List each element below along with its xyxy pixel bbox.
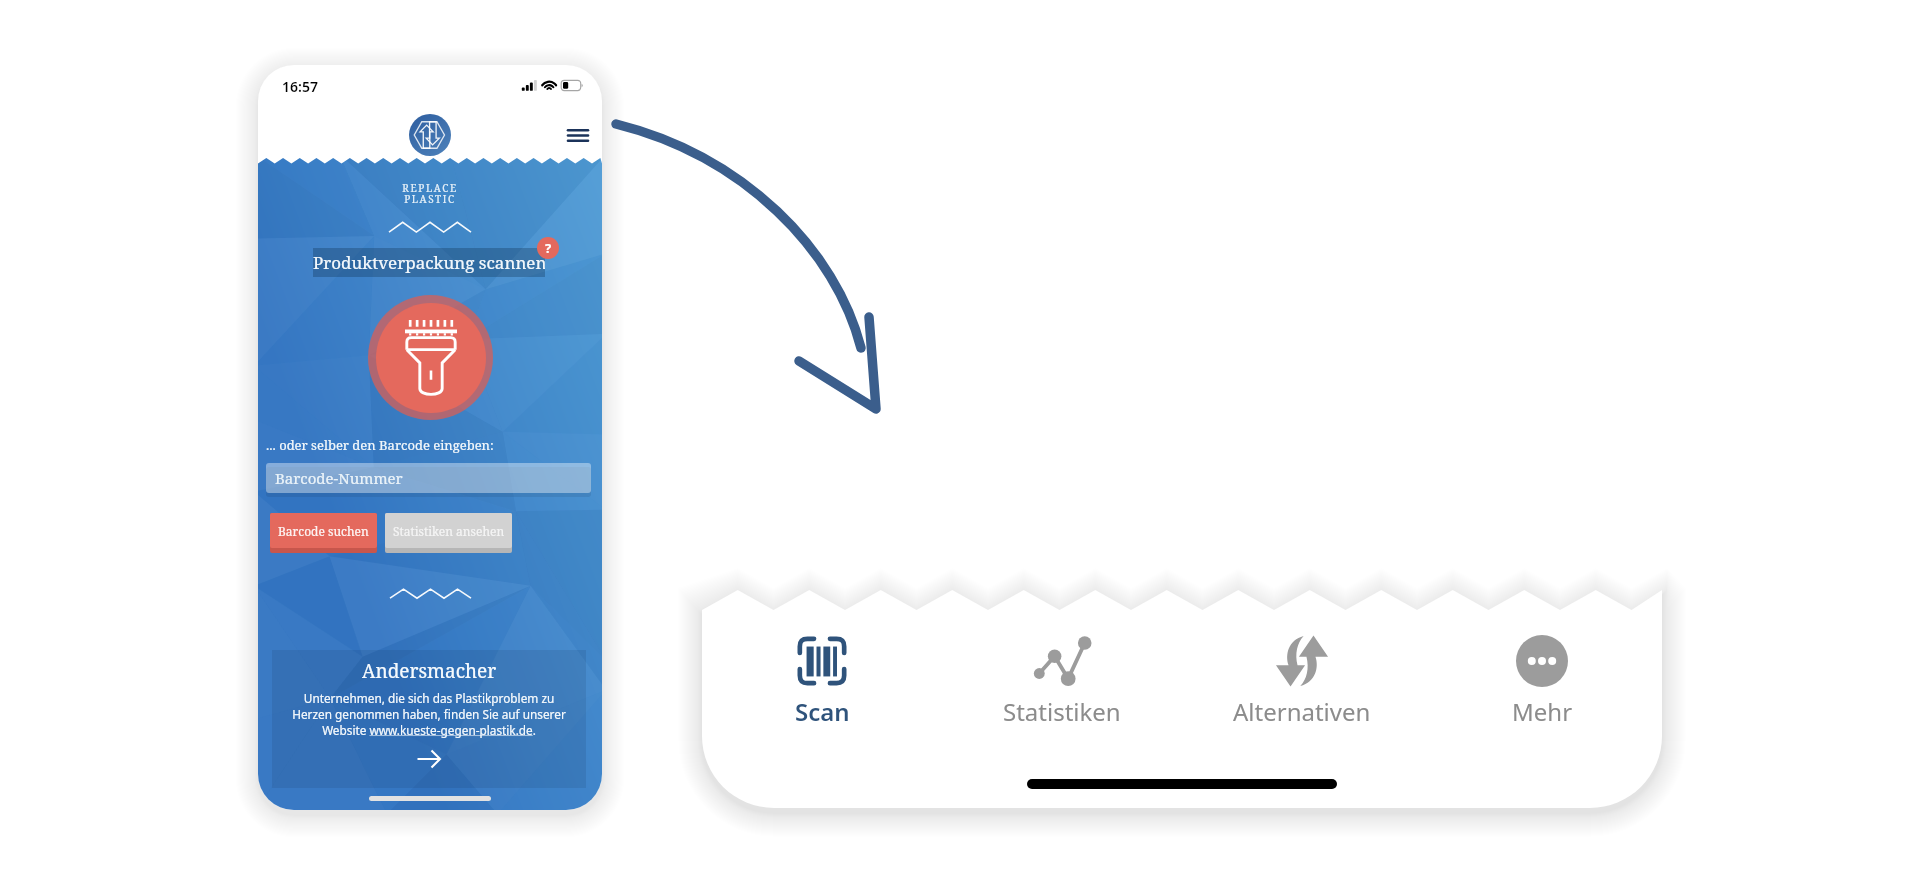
staticText: Produktverpackung scannen (313, 251, 545, 274)
button[interactable]: Alternativen (1182, 631, 1422, 728)
button[interactable]: Hilfe (537, 237, 559, 259)
staticText: Barcode suchen (278, 523, 369, 539)
button[interactable]: Mehr (1422, 631, 1662, 728)
staticText: Barcode-Nummer (275, 468, 403, 488)
button[interactable]: Scan (702, 631, 942, 728)
button[interactable]: Produktverpackung scannen (313, 248, 545, 277)
staticText: Scan (795, 695, 850, 728)
staticText: Unternehmen, die sich das Plastikproblem… (292, 690, 566, 738)
button[interactable]: Barcode-Nummer (266, 463, 591, 493)
button[interactable]: Menu (556, 113, 600, 157)
button[interactable]: Barcode suchen (270, 513, 377, 548)
staticText: REPLACE PLASTIC (402, 181, 458, 206)
button[interactable]: Statistiken (942, 631, 1182, 728)
staticText: Alternativen (1233, 695, 1371, 728)
staticText: ? (545, 239, 552, 257)
staticText: ... oder selber den Barcode eingeben: (266, 436, 494, 454)
staticText: Statistiken ansehen (393, 523, 505, 539)
button[interactable]: Andersmacher (272, 650, 586, 788)
staticText: Statistiken (1003, 695, 1121, 728)
button[interactable]: Produktverpackung scannen (368, 295, 493, 420)
staticText: 16:57 (282, 77, 318, 96)
staticText: Mehr (1512, 695, 1573, 728)
button[interactable]: Statistiken ansehen (385, 513, 512, 548)
staticText: Andersmacher (362, 658, 497, 684)
